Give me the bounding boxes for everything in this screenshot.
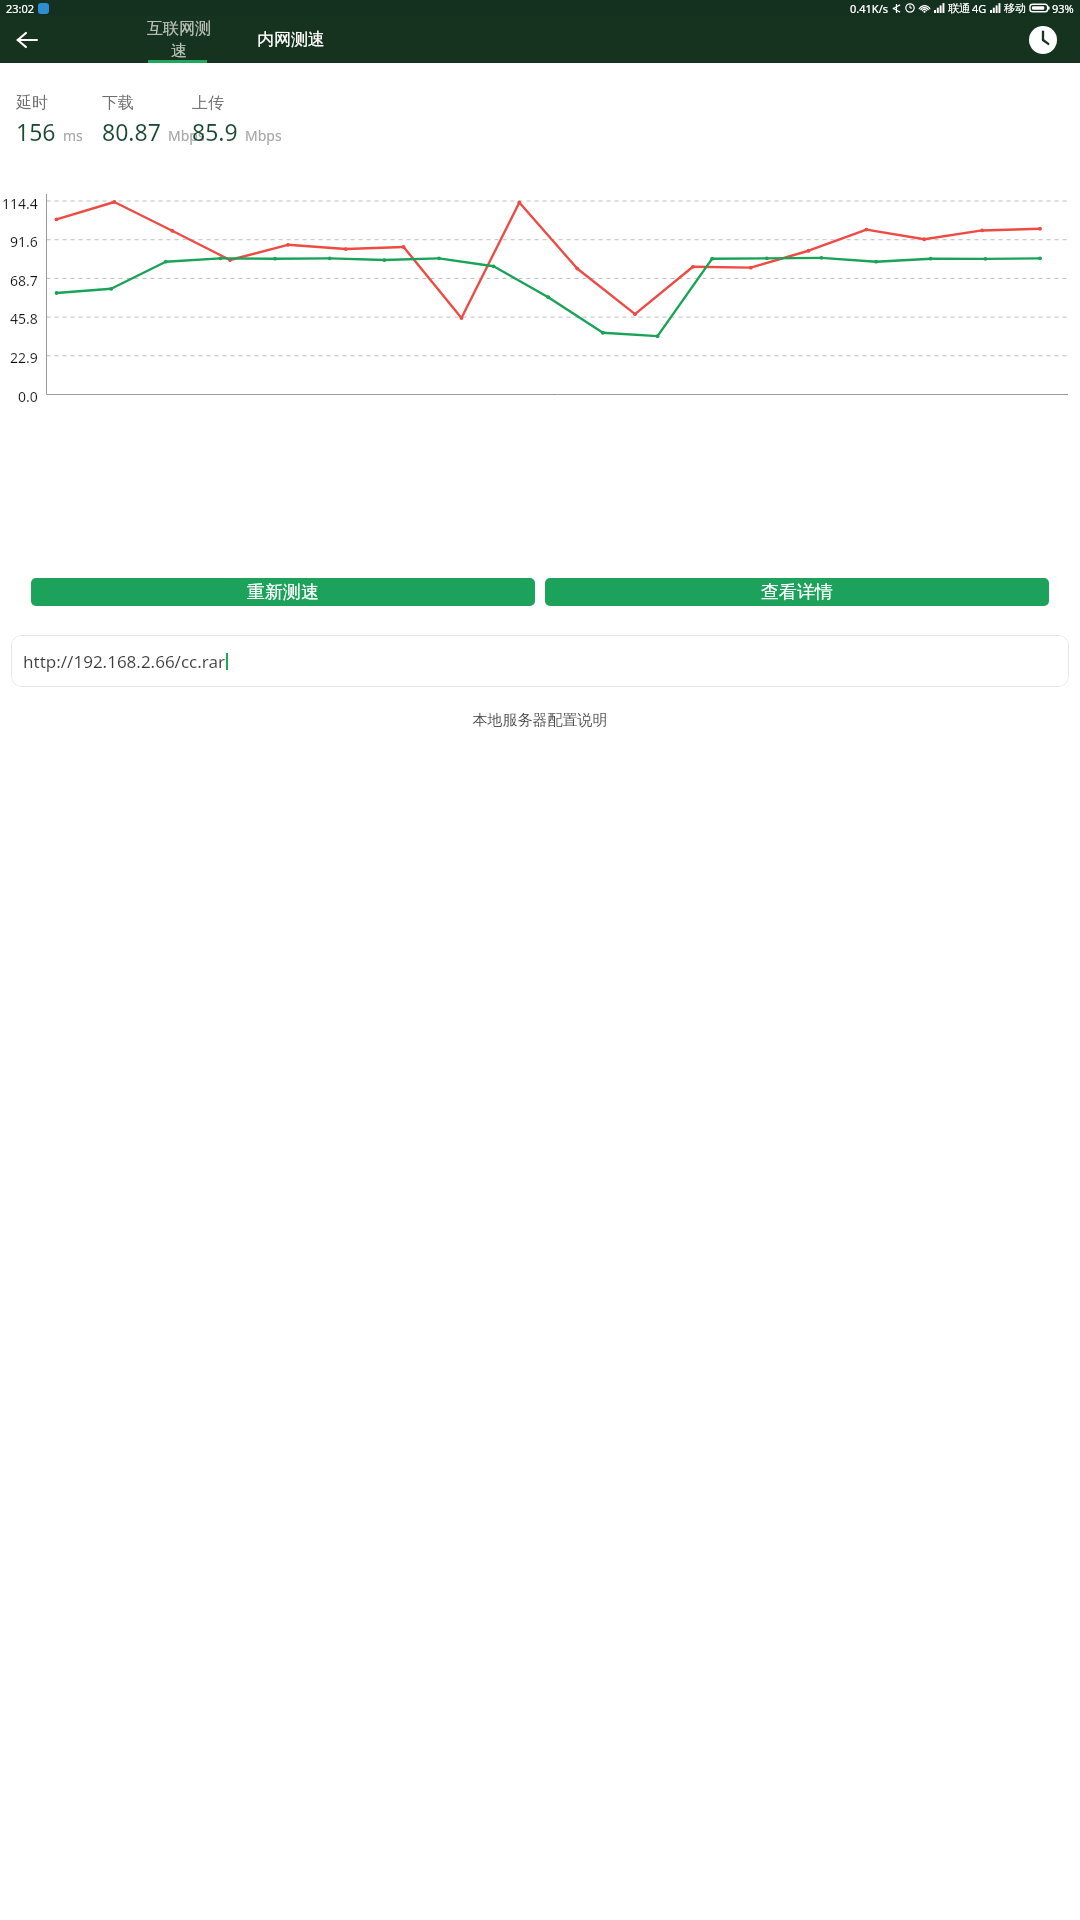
staticText: 下载 — [102, 93, 134, 113]
staticText: 23:02 — [6, 1, 35, 16]
staticText: 80.87 — [102, 116, 161, 147]
button[interactable]: 互联网测速 — [131, 16, 227, 63]
button[interactable]: History — [1026, 23, 1060, 57]
button[interactable]: 查看详情 — [545, 578, 1049, 606]
staticText: 移动 — [1004, 1, 1026, 15]
staticText: http://192.168.2.66/cc.rar — [23, 650, 226, 673]
staticText: 156 — [16, 116, 56, 147]
staticText: 联通 — [948, 1, 970, 15]
staticText: 0.41K/s — [850, 1, 888, 16]
staticText: 查看详情 — [761, 581, 833, 604]
staticText: 上传 — [192, 93, 224, 113]
staticText: 4G — [972, 1, 987, 16]
staticText: 91.6 — [10, 232, 38, 251]
staticText: 114.4 — [2, 194, 38, 213]
staticText: 45.8 — [10, 309, 38, 328]
staticText: Mbps — [168, 126, 205, 145]
staticText: 93% — [1052, 1, 1074, 16]
staticText: 85.9 — [192, 116, 238, 147]
staticText: Mbps — [245, 126, 282, 145]
staticText: 内网测速 — [257, 29, 325, 50]
staticText: 22.9 — [10, 348, 38, 367]
staticText: 互联网测速 — [143, 19, 215, 61]
button[interactable]: 内网测速 — [231, 16, 351, 63]
staticText: 0.0 — [18, 387, 38, 406]
staticText: 68.7 — [10, 271, 38, 290]
staticText: ms — [63, 126, 83, 145]
button[interactable]: 重新测速 — [31, 578, 535, 606]
button[interactable]: Back — [10, 23, 44, 57]
staticText: 延时 — [16, 93, 48, 113]
staticText: 重新测速 — [247, 581, 319, 604]
button[interactable]: http://192.168.2.66/cc.rar — [11, 635, 1069, 687]
staticText: 本地服务器配置说明 — [0, 711, 1080, 730]
